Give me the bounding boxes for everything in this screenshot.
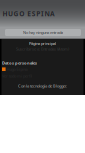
staticText: No hay ninguna entrada [23,30,63,35]
button[interactable]: HUGO ESPINA [2,9,82,19]
staticText: Con la tecnología de Blogger. [18,83,67,89]
staticText: Hugo Espina [6,66,27,72]
staticText: HUGO ESPINA [2,9,55,18]
staticText: Suscribirse a: Entradas (Atom) [16,46,69,52]
button[interactable]: Página principal [1,41,83,46]
staticText: Página principal [29,41,56,46]
staticText: Datos personales [2,60,37,66]
